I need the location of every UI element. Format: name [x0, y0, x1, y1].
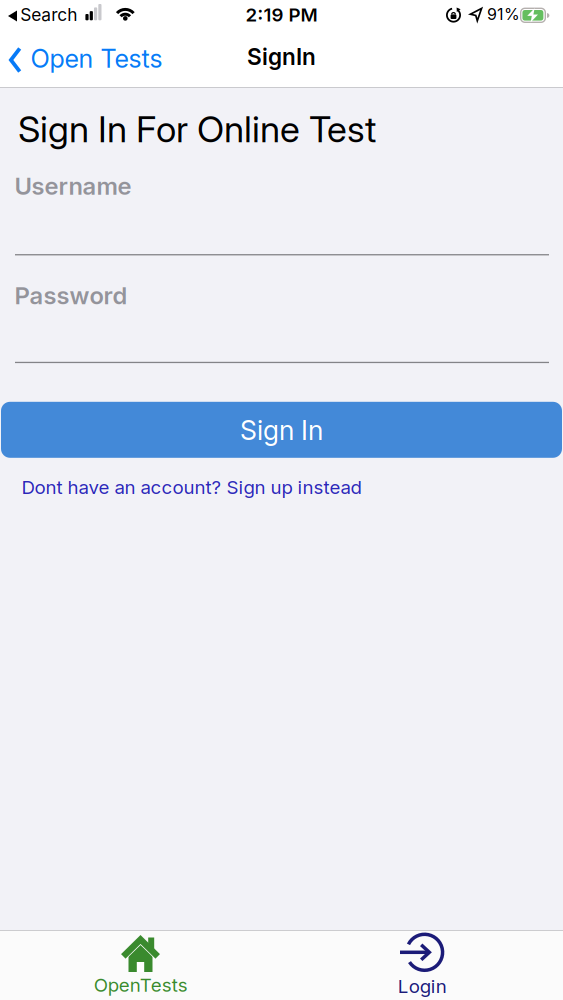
- staticText: 2:19 PM: [245, 4, 317, 26]
- staticText: Sign In: [240, 415, 323, 446]
- staticText: Password: [14, 281, 127, 310]
- staticText: 91%: [487, 5, 520, 24]
- staticText: Open Tests: [30, 44, 162, 73]
- staticText: Login: [398, 975, 447, 997]
- staticText: SignIn: [247, 43, 316, 70]
- staticText: Dont have an account? Sign up instead: [21, 476, 361, 498]
- staticText: Search: [20, 4, 77, 25]
- staticText: OpenTests: [94, 974, 188, 996]
- staticText: Sign In For Online Test: [18, 108, 376, 150]
- button[interactable]: Open Tests, back: [0, 30, 168, 87]
- button[interactable]: Dont have an account? Sign up instead: [21, 476, 361, 498]
- button[interactable]: Login: [281, 931, 563, 1000]
- button[interactable]: Sign In: [1, 402, 562, 458]
- staticText: Username: [14, 172, 131, 200]
- button[interactable]: OpenTests: [0, 931, 281, 1000]
